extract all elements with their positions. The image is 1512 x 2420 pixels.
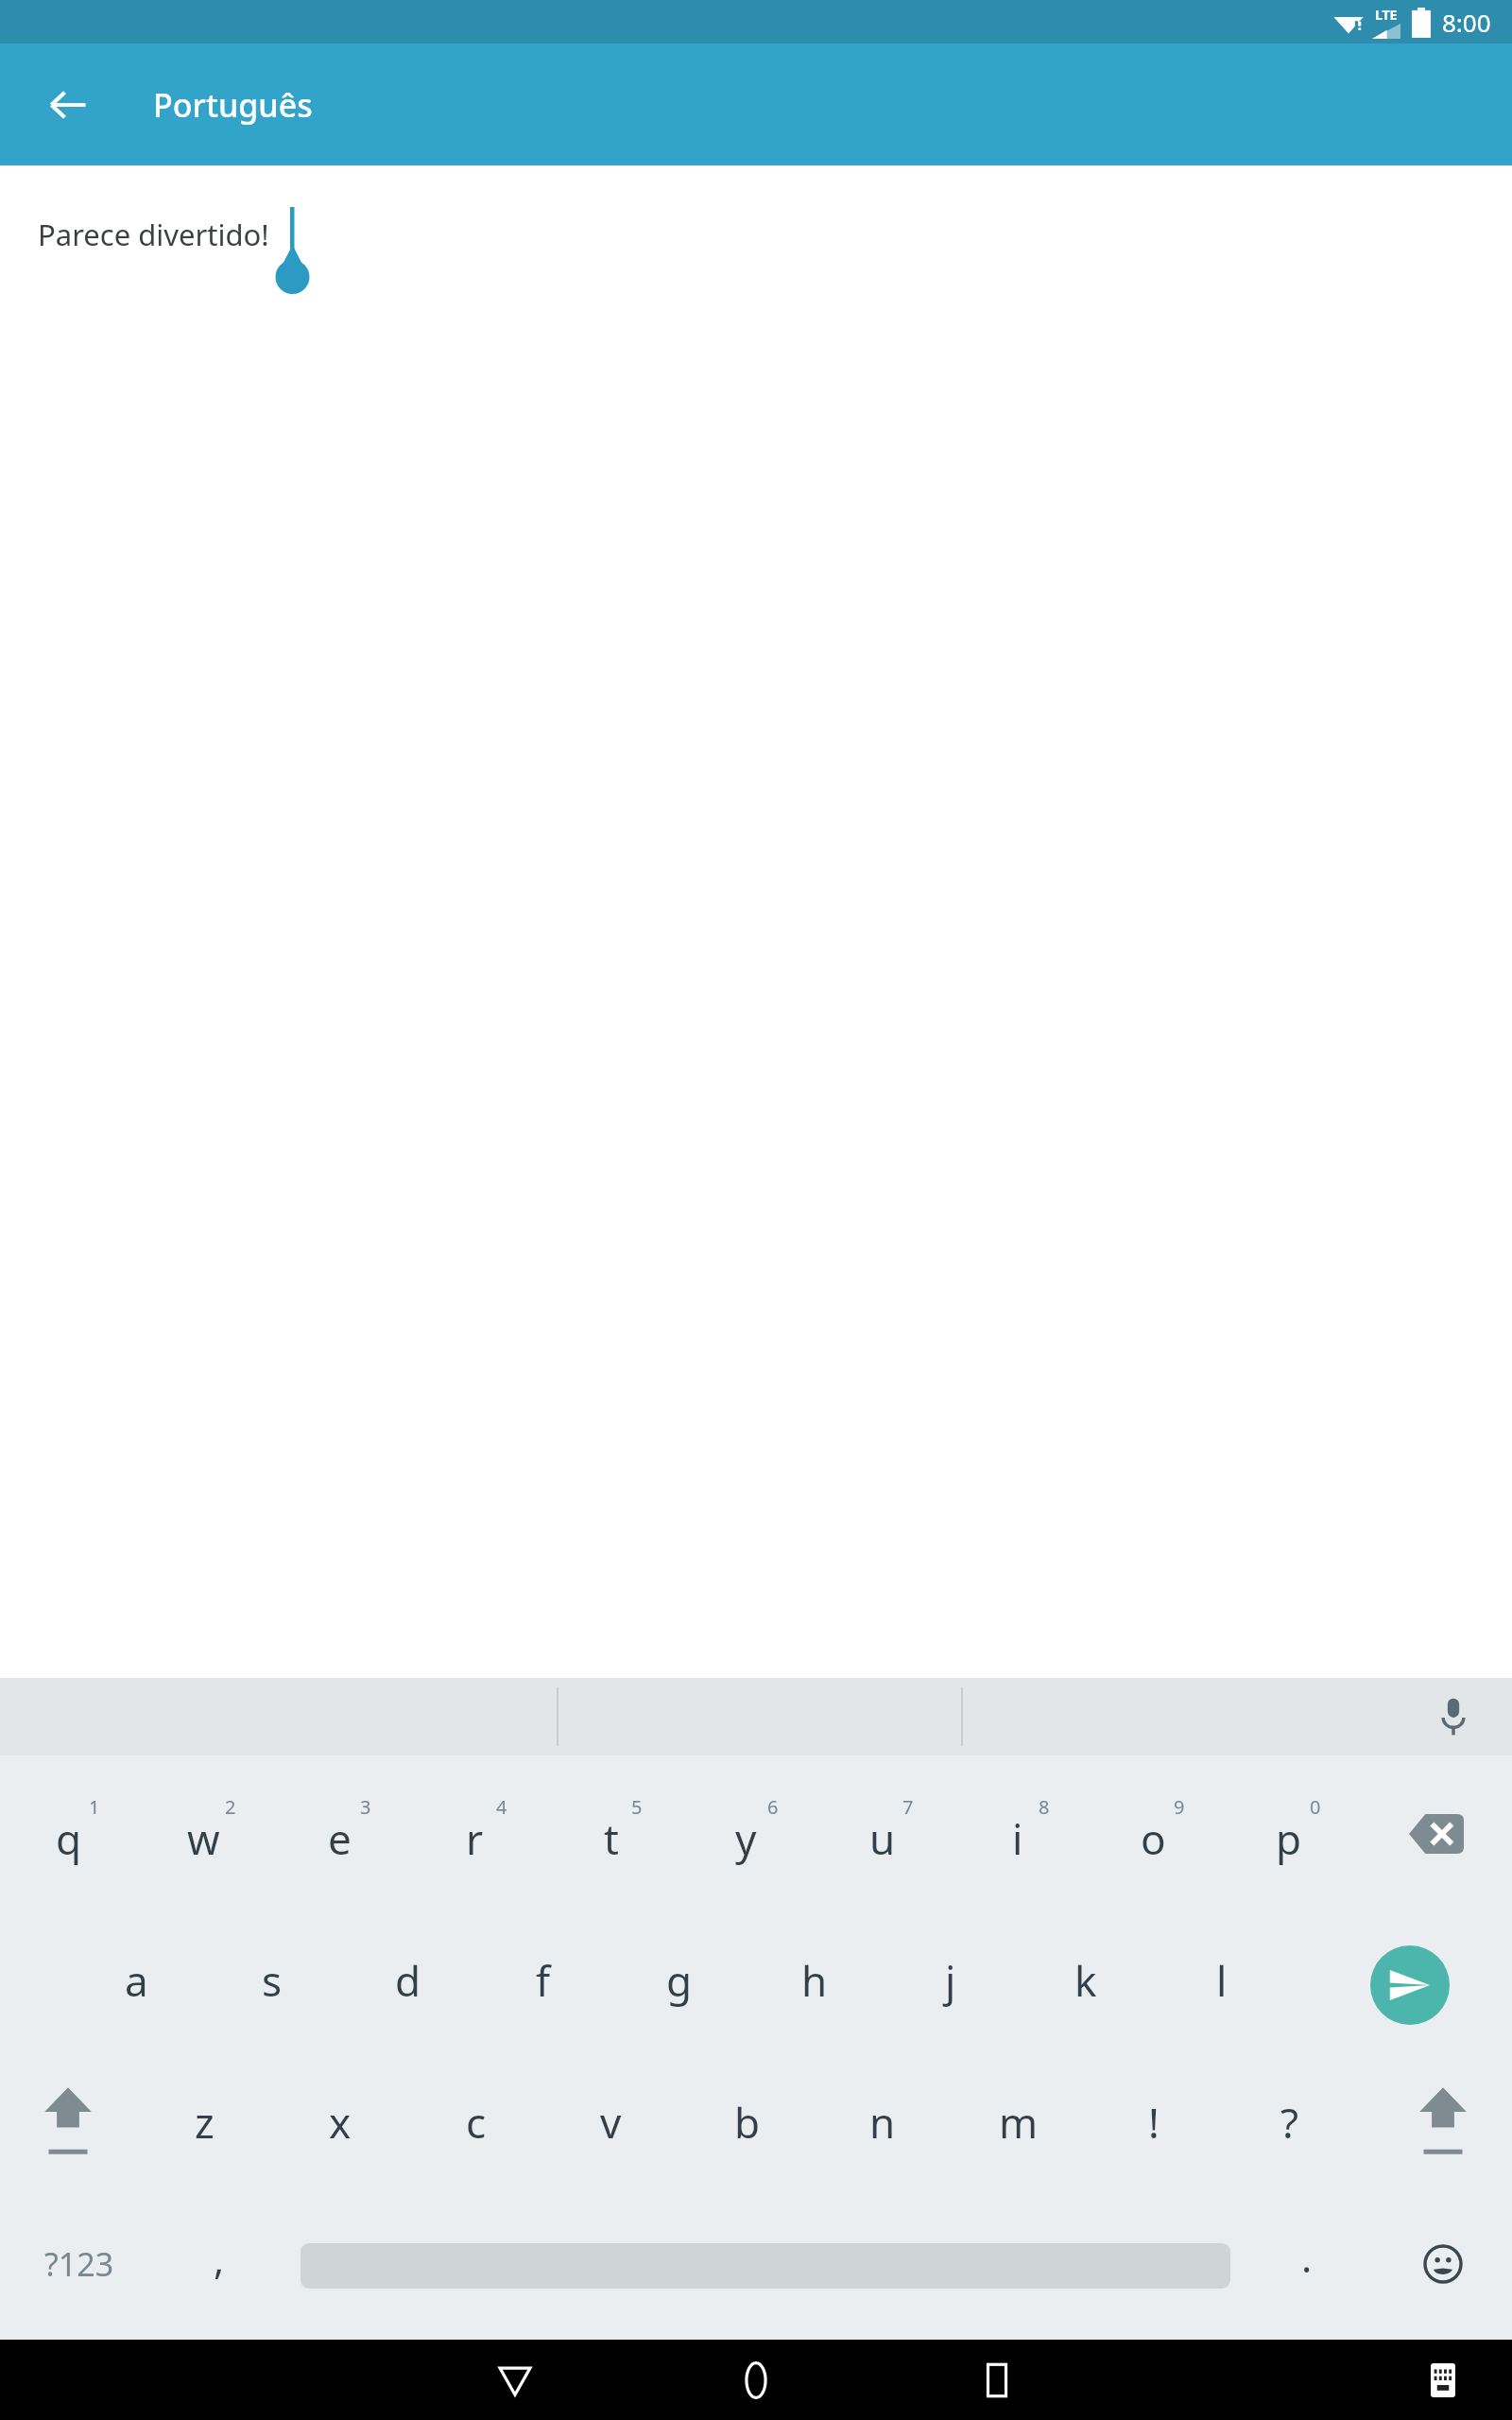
- staticText: a: [125, 1952, 148, 2009]
- button[interactable]: z: [137, 2051, 272, 2193]
- staticText: v: [600, 2094, 622, 2151]
- staticText: r: [466, 1810, 484, 1867]
- staticText: w: [187, 1810, 220, 1867]
- staticText: l: [1216, 1952, 1228, 2009]
- staticText: Parece divertido!: [38, 215, 269, 254]
- button[interactable]: Home: [704, 2340, 808, 2420]
- staticText: ,: [214, 2232, 225, 2286]
- staticText: b: [734, 2094, 761, 2151]
- button[interactable]: p: [1221, 1763, 1356, 1905]
- button[interactable]: e: [272, 1763, 407, 1905]
- staticText: h: [801, 1952, 828, 2009]
- staticText: z: [195, 2094, 215, 2151]
- button[interactable]: o: [1086, 1763, 1221, 1905]
- button[interactable]: k: [1018, 1910, 1153, 2051]
- button[interactable]: m: [951, 2051, 1086, 2193]
- staticText: u: [869, 1810, 896, 1867]
- button[interactable]: i: [950, 1763, 1085, 1905]
- button[interactable]: q: [1, 1763, 136, 1905]
- button[interactable]: Back: [25, 61, 112, 148]
- button[interactable]: h: [747, 1910, 882, 2051]
- staticText: 1: [89, 1794, 100, 1820]
- staticText: .: [1301, 2230, 1313, 2284]
- button[interactable]: l: [1154, 1910, 1289, 2051]
- button[interactable]: Backspace: [1370, 1763, 1503, 1905]
- staticText: ?123: [44, 2242, 114, 2286]
- staticText: 2: [225, 1794, 236, 1820]
- button[interactable]: ?: [1222, 2051, 1357, 2193]
- staticText: c: [466, 2094, 487, 2151]
- button[interactable]: w: [136, 1763, 271, 1905]
- staticText: 8: [1039, 1794, 1050, 1820]
- button[interactable]: b: [679, 2051, 815, 2193]
- staticText: 8:00: [1442, 6, 1491, 39]
- button[interactable]: f: [475, 1910, 610, 2051]
- staticText: q: [56, 1810, 82, 1867]
- staticText: 6: [767, 1794, 779, 1820]
- staticText: p: [1276, 1810, 1302, 1867]
- button[interactable]: !: [1086, 2051, 1221, 2193]
- button[interactable]: Emoji: [1382, 2203, 1504, 2325]
- staticText: 4: [496, 1794, 507, 1820]
- staticText: 3: [360, 1794, 371, 1820]
- staticText: f: [536, 1952, 551, 2009]
- button[interactable]: Parece divertido!: [0, 165, 1512, 1678]
- button[interactable]: Recent apps: [945, 2340, 1049, 2420]
- staticText: 9: [1174, 1794, 1185, 1820]
- button[interactable]: g: [611, 1910, 747, 2051]
- button[interactable]: Shift: [2, 2051, 134, 2193]
- button[interactable]: c: [408, 2051, 543, 2193]
- button[interactable]: Shift: [1377, 2051, 1509, 2193]
- staticText: k: [1074, 1952, 1097, 2009]
- button[interactable]: u: [815, 1763, 950, 1905]
- button[interactable]: ?123: [0, 2207, 151, 2321]
- staticText: LTE: [1375, 6, 1398, 24]
- staticText: e: [328, 1810, 352, 1867]
- staticText: 7: [902, 1794, 914, 1820]
- staticText: s: [262, 1952, 283, 2009]
- staticText: i: [1012, 1810, 1023, 1867]
- staticText: g: [666, 1952, 693, 2009]
- button[interactable]: Back: [463, 2340, 567, 2420]
- staticText: d: [395, 1952, 421, 2009]
- button[interactable]: Switch keyboard: [1400, 2340, 1486, 2420]
- staticText: 0: [1310, 1794, 1321, 1820]
- button[interactable]: s: [204, 1910, 339, 2051]
- button[interactable]: r: [407, 1763, 542, 1905]
- staticText: !: [1148, 2094, 1160, 2151]
- button[interactable]: Send: [1344, 1919, 1476, 2051]
- staticText: x: [329, 2094, 352, 2151]
- staticText: y: [735, 1810, 757, 1867]
- button[interactable]: t: [543, 1763, 679, 1905]
- staticText: Português: [153, 83, 313, 127]
- staticText: 5: [631, 1794, 643, 1820]
- button[interactable]: Voice input: [1417, 1681, 1489, 1753]
- button[interactable]: j: [883, 1910, 1018, 2051]
- staticText: ?: [1280, 2094, 1299, 2151]
- staticText: t: [604, 1810, 619, 1867]
- button[interactable]: x: [272, 2051, 407, 2193]
- button[interactable]: v: [543, 2051, 679, 2193]
- staticText: n: [869, 2094, 896, 2151]
- button[interactable]: .: [1250, 2207, 1364, 2321]
- button[interactable]: a: [69, 1910, 204, 2051]
- staticText: j: [945, 1952, 956, 2009]
- staticText: m: [999, 2094, 1039, 2151]
- button[interactable]: ,: [163, 2207, 276, 2321]
- button[interactable]: n: [815, 2051, 950, 2193]
- staticText: o: [1141, 1810, 1166, 1867]
- button[interactable]: y: [679, 1763, 814, 1905]
- button[interactable]: Space: [301, 2243, 1230, 2289]
- button[interactable]: d: [340, 1910, 475, 2051]
